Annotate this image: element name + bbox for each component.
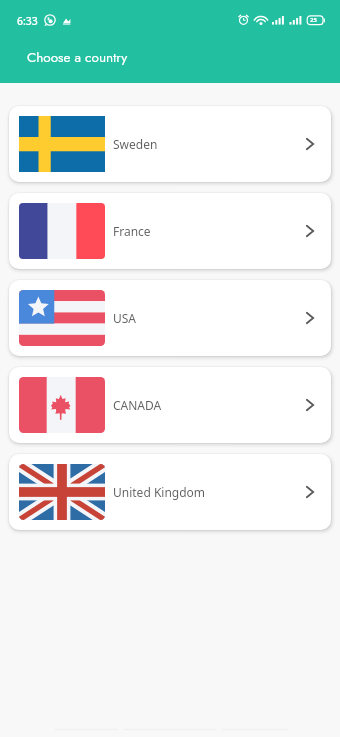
staticText: 6:33 xyxy=(17,14,38,28)
staticText: Choose a country xyxy=(27,48,128,68)
button[interactable]: Sweden xyxy=(9,106,331,182)
other: Open Sweden xyxy=(299,133,321,155)
staticText: Sweden xyxy=(113,136,158,152)
staticText: 25 xyxy=(310,16,317,24)
button[interactable]: United Kingdom xyxy=(9,454,331,530)
other: Open France xyxy=(299,220,321,242)
other: Open USA xyxy=(299,307,321,329)
other: Open CANADA xyxy=(299,394,321,416)
other: Open United Kingdom xyxy=(299,481,321,503)
button[interactable]: CANADA xyxy=(9,367,331,443)
button[interactable]: USA xyxy=(9,280,331,356)
staticText: France xyxy=(113,223,151,239)
staticText: USA xyxy=(113,310,137,326)
staticText: United Kingdom xyxy=(113,484,206,500)
staticText: CANADA xyxy=(113,397,162,413)
button[interactable]: France xyxy=(9,193,331,269)
